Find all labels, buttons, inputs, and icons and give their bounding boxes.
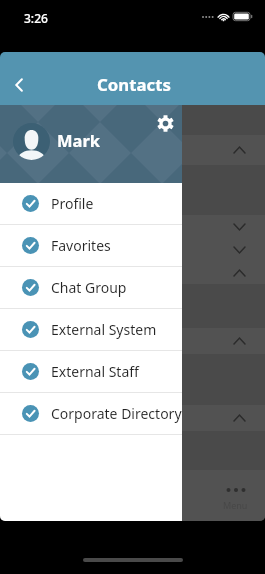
button[interactable]: External System [0,309,182,350]
button[interactable]: Corporate Directory [0,393,182,434]
button[interactable]: Back [1,67,37,103]
button[interactable]: Favorites [0,225,182,266]
staticText: Chat Group [51,278,127,297]
staticText: Mark [57,129,101,151]
staticText: Contacts [97,73,171,96]
staticText: Profile [51,194,94,213]
button[interactable]: Chat Group [0,267,182,308]
staticText: External Staff [51,362,139,381]
staticText: Favorites [51,236,111,255]
button[interactable]: External Staff [0,351,182,392]
button[interactable]: Profile [0,183,182,224]
staticText: Corporate Directory [51,404,182,423]
staticText: External System [51,320,157,339]
staticText: 3:26 [24,10,48,26]
button[interactable]: Settings [151,109,179,137]
button[interactable]: Menu [223,486,248,511]
